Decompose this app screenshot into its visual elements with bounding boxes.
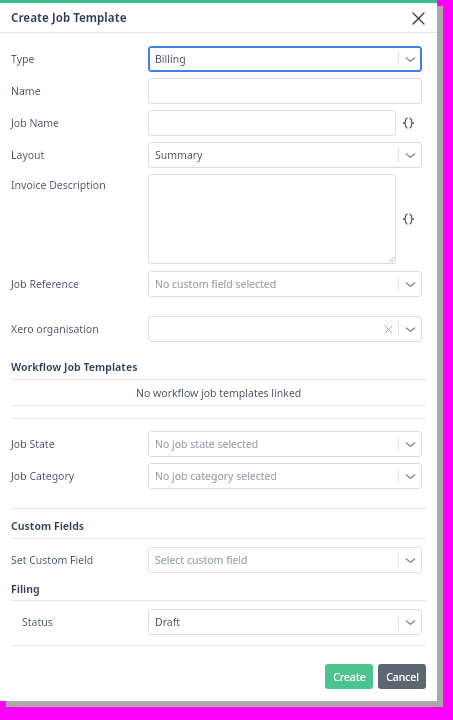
staticText: No job state selected [155, 437, 259, 451]
staticText: Job Name [11, 116, 60, 130]
staticText: No job category selected [155, 469, 277, 483]
staticText: Set Custom Field [11, 553, 94, 567]
staticText: Draft [155, 615, 181, 629]
staticText: Xero organisation [11, 322, 99, 336]
button[interactable]: Draft [148, 609, 422, 635]
button[interactable] [148, 110, 396, 136]
button[interactable]: Select custom field [148, 547, 422, 573]
button[interactable]: Summary [148, 142, 422, 168]
button[interactable]: Cancel [378, 664, 426, 689]
staticText: Custom Fields [11, 519, 85, 533]
staticText: Create [333, 670, 366, 684]
staticText: Job Reference [11, 277, 79, 291]
button[interactable] [148, 78, 422, 104]
staticText: No custom field selected [155, 277, 277, 291]
staticText: Invoice Description [11, 178, 106, 192]
staticText: Type [11, 52, 35, 66]
button[interactable]: No custom field selected [148, 271, 422, 297]
button[interactable]: Insert merge field [402, 174, 415, 264]
staticText: Workflow Job Templates [11, 360, 138, 374]
button[interactable] [148, 174, 396, 264]
button[interactable]: No job category selected [148, 463, 422, 489]
staticText: Job Category [11, 469, 75, 483]
staticText: Layout [11, 148, 45, 162]
staticText: Create Job Template [11, 10, 127, 26]
staticText: Job State [11, 437, 55, 451]
staticText: Filing [11, 582, 40, 596]
staticText: Select custom field [155, 553, 248, 567]
button[interactable]: Create [325, 664, 373, 689]
staticText: Status [22, 615, 53, 629]
button[interactable] [148, 316, 422, 342]
staticText: Name [11, 84, 41, 98]
staticText: No workflow job templates linked [136, 386, 302, 400]
staticText: Billing [155, 52, 186, 66]
button[interactable]: Insert merge field [402, 116, 415, 130]
staticText: Cancel [386, 670, 419, 684]
staticText: Summary [155, 148, 203, 162]
button[interactable]: Close [406, 6, 430, 30]
button[interactable]: Billing [148, 46, 422, 72]
button[interactable]: No job state selected [148, 431, 422, 457]
